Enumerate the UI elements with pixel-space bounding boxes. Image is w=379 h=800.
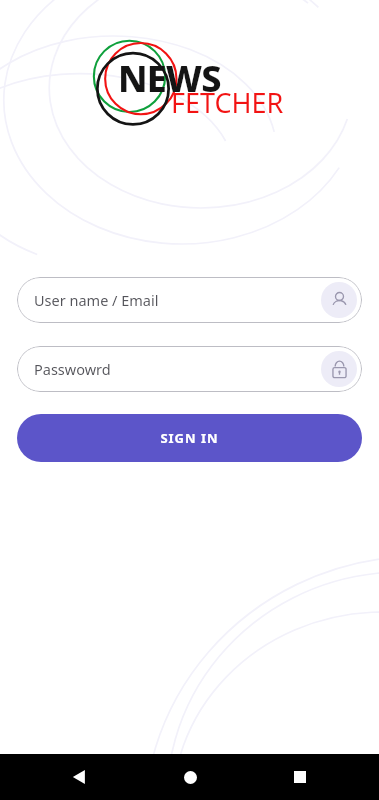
- staticText: FETCHER: [171, 84, 284, 121]
- button[interactable]: Passwowrd: [17, 346, 362, 392]
- staticText: SIGN IN: [160, 429, 219, 447]
- button[interactable]: Recent apps: [283, 760, 317, 794]
- staticText: NEWS: [118, 54, 221, 103]
- staticText: User name / Email: [34, 290, 321, 310]
- button[interactable]: Back: [62, 760, 96, 794]
- button[interactable]: SIGN IN: [17, 414, 362, 462]
- button[interactable]: Home: [173, 760, 207, 794]
- staticText: Passwowrd: [34, 359, 321, 379]
- button[interactable]: User name / Email: [17, 277, 362, 323]
- other: User name or email: [321, 282, 357, 318]
- other: Password: [321, 351, 357, 387]
